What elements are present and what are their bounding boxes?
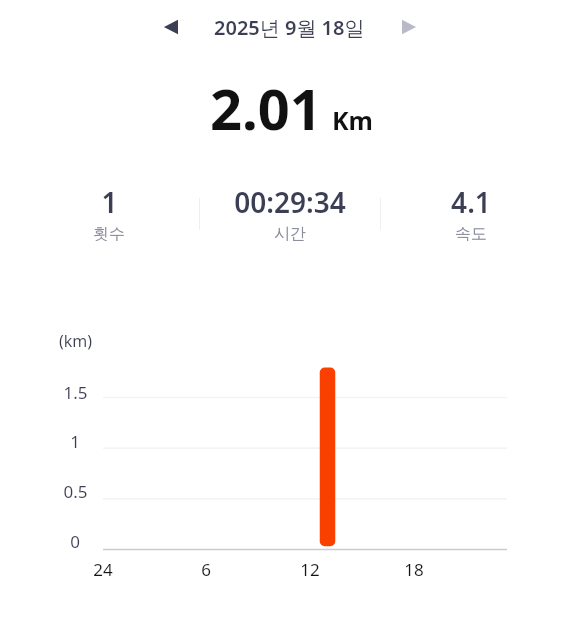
button[interactable]: Next day	[389, 8, 427, 46]
staticText: (km)	[59, 330, 93, 352]
button[interactable]: Daily distance chart	[36, 325, 526, 585]
staticText: 2.01	[210, 70, 322, 134]
staticText: 4.1	[451, 183, 491, 221]
staticText: 횟수	[93, 224, 125, 244]
staticText: 24	[93, 558, 113, 581]
button[interactable]: 1	[19, 183, 199, 244]
staticText: 12	[300, 558, 320, 581]
staticText: 속도	[455, 224, 487, 244]
staticText: 1.5	[63, 381, 88, 404]
staticText: 2025년 9월 18일	[214, 14, 365, 41]
button[interactable]: 00:29:34	[200, 183, 380, 244]
staticText: 0	[70, 530, 80, 553]
staticText: 1	[101, 183, 118, 221]
button[interactable]: Previous day	[153, 8, 191, 46]
staticText: 18	[404, 558, 424, 581]
staticText: 00:29:34	[234, 183, 346, 221]
staticText: 0.5	[63, 480, 88, 503]
staticText: Km	[332, 103, 373, 137]
staticText: 6	[201, 558, 211, 581]
staticText: 시간	[274, 224, 306, 244]
staticText: 1	[70, 430, 80, 453]
button[interactable]: 4.1	[381, 183, 561, 244]
